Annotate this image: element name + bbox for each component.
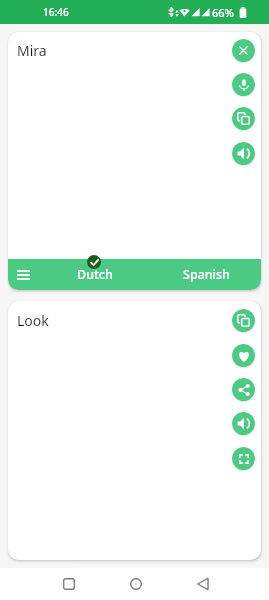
staticText: 16:46 xyxy=(43,5,69,19)
button[interactable]: Copy xyxy=(232,309,255,332)
button[interactable]: Recents xyxy=(52,568,86,600)
button[interactable]: Dutch xyxy=(38,259,149,290)
button[interactable]: Fullscreen xyxy=(232,447,255,470)
button[interactable]: Share xyxy=(232,378,255,401)
button[interactable]: Copy xyxy=(232,107,255,130)
button[interactable]: Spanish xyxy=(149,259,261,290)
button[interactable]: Back xyxy=(186,568,220,600)
button[interactable]: Verified xyxy=(87,255,101,269)
button[interactable]: Speak xyxy=(232,412,255,435)
button[interactable]: Close xyxy=(232,39,255,62)
staticText: Dutch xyxy=(77,266,113,283)
button[interactable]: Menu xyxy=(8,259,38,290)
staticText: Spanish xyxy=(183,266,230,283)
button[interactable]: Speak xyxy=(232,142,255,165)
staticText: Mira xyxy=(17,41,47,60)
button[interactable]: Microphone xyxy=(232,73,255,96)
staticText: Look xyxy=(17,311,49,330)
button[interactable]: Favorite xyxy=(232,344,255,367)
button[interactable]: Home xyxy=(119,568,153,600)
staticText: 66% xyxy=(212,5,234,20)
